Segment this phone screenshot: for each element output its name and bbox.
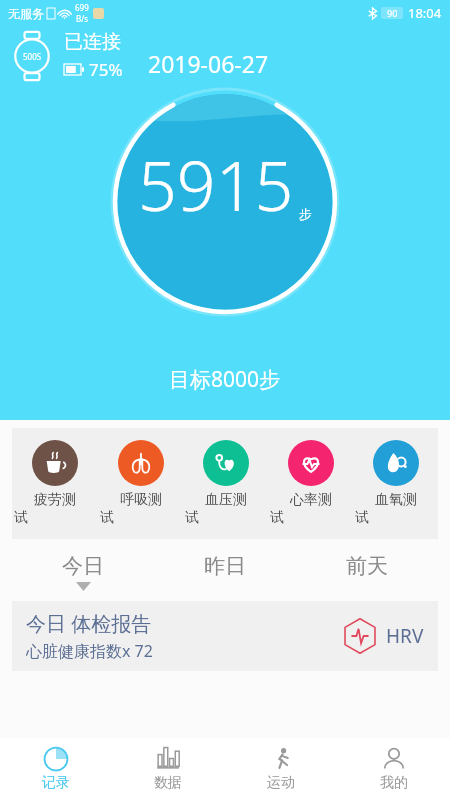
staticText: 我的 (380, 774, 408, 792)
staticText: 500S (23, 51, 42, 62)
button[interactable]: 数据 (112, 741, 224, 797)
staticText: 75% (89, 58, 123, 81)
button[interactable]: 运动 (224, 741, 337, 797)
staticText: 目标8000步 (169, 365, 281, 394)
staticText: 数据 (154, 774, 182, 792)
staticText: 试 (185, 509, 199, 527)
button[interactable]: 昨日 (154, 553, 296, 591)
staticText: 血氧测 (375, 491, 417, 509)
staticText: 心脏健康指数x 72 (26, 640, 153, 662)
other: 数据 (155, 746, 181, 772)
staticText: 5915 (138, 138, 294, 231)
staticText: 今日 体检报告 (26, 610, 152, 637)
staticText: 试 (14, 509, 28, 527)
button[interactable]: 心率测 (268, 438, 353, 529)
button[interactable]: 呼吸测 (98, 438, 183, 529)
staticText: 心率测 (290, 491, 332, 509)
staticText: 已连接 (64, 30, 121, 54)
other: 记录 (43, 746, 69, 772)
staticText: 试 (100, 509, 114, 527)
button[interactable]: 血氧测 (353, 438, 438, 529)
staticText: 前天 (346, 553, 388, 579)
staticText: HRV (386, 623, 424, 649)
staticText: 今日 (62, 553, 104, 579)
button[interactable]: 今日 (12, 553, 154, 591)
staticText: 18:04 (408, 4, 442, 22)
staticText: 2019-06-27 (148, 48, 269, 79)
staticText: B/s (76, 13, 89, 24)
button[interactable]: 疲劳测 (12, 438, 98, 529)
staticText: 血压测 (205, 491, 247, 509)
staticText: 呼吸测 (120, 491, 162, 509)
button[interactable]: 记录 (0, 741, 112, 797)
button[interactable]: 前天 (296, 553, 438, 591)
staticText: 步 (299, 206, 312, 222)
staticText: 90 (387, 7, 398, 19)
button[interactable]: 我的 (337, 741, 450, 797)
staticText: 试 (270, 509, 284, 527)
staticText: 疲劳测 (34, 491, 76, 509)
staticText: 昨日 (204, 553, 246, 579)
staticText: 记录 (42, 774, 70, 792)
staticText: 699 (75, 2, 89, 13)
other: 我的 (381, 746, 407, 772)
button[interactable]: 血压测 (183, 438, 268, 529)
button[interactable]: 今日 体检报告 (12, 601, 438, 671)
staticText: 运动 (267, 774, 295, 792)
staticText: 试 (355, 509, 369, 527)
other: 运动 (268, 746, 294, 772)
staticText: 无服务 (8, 6, 44, 21)
